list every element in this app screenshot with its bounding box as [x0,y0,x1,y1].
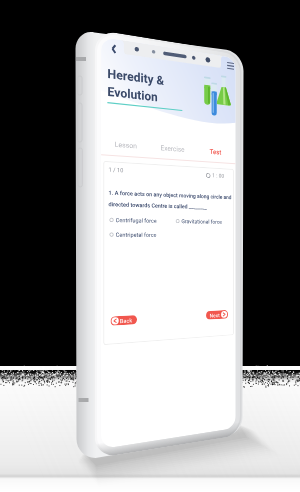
staticText: 1 : 00 [212,172,225,180]
staticText: Lesson [115,140,137,150]
staticText: Test [210,148,222,156]
button[interactable]: Back [110,315,137,326]
staticText: Exercise [161,144,185,154]
button[interactable]: Back [103,37,122,59]
button[interactable]: Centripetal force [109,231,157,238]
button[interactable]: Centrifugal force [109,217,157,224]
staticText: Centrifugal force [116,217,157,224]
button[interactable]: Lesson [101,134,150,155]
staticText: Heredity & [107,66,164,88]
button[interactable]: Exercise [150,138,194,158]
staticText: Centripetal force [116,231,157,238]
staticText: 1 / 10 [108,166,124,174]
staticText: 1. A force acts on any object moving alo… [108,189,234,211]
button[interactable]: Test [194,142,236,161]
button[interactable]: Gravitational force [176,218,222,225]
button[interactable]: Menu [227,61,234,70]
button[interactable]: Next [206,310,228,320]
staticText: Next [210,312,220,319]
staticText: Back [120,317,133,324]
staticText: Evolution [107,84,159,104]
staticText: Gravitational force [181,218,222,225]
